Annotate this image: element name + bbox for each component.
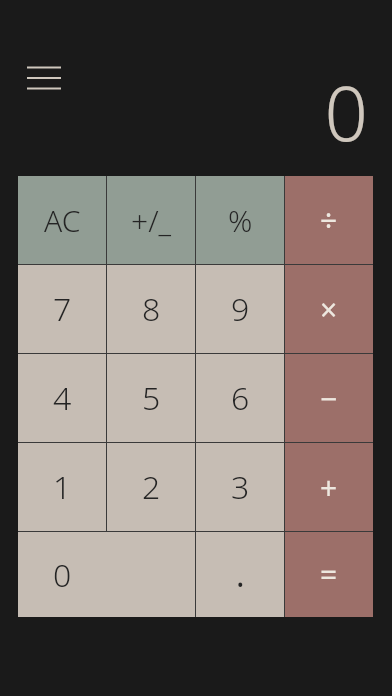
staticText: 6 bbox=[231, 376, 250, 420]
button[interactable]: +/_ bbox=[107, 176, 195, 264]
staticText: 1 bbox=[53, 465, 72, 509]
button[interactable]: = bbox=[285, 532, 373, 617]
button[interactable]: + bbox=[285, 443, 373, 531]
button[interactable]: 9 bbox=[196, 265, 284, 353]
staticText: 7 bbox=[53, 287, 72, 331]
button[interactable]: − bbox=[285, 354, 373, 442]
button[interactable]: . bbox=[196, 532, 284, 617]
button[interactable]: 4 bbox=[18, 354, 106, 442]
button[interactable]: 0 bbox=[18, 532, 195, 617]
button[interactable]: × bbox=[285, 265, 373, 353]
staticText: ÷ bbox=[320, 200, 338, 241]
staticText: 2 bbox=[142, 465, 161, 509]
staticText: 9 bbox=[231, 287, 250, 331]
staticText: AC bbox=[44, 200, 81, 241]
staticText: 0 bbox=[324, 60, 368, 164]
button[interactable]: AC bbox=[18, 176, 106, 264]
staticText: +/_ bbox=[131, 200, 172, 241]
button[interactable]: 5 bbox=[107, 354, 195, 442]
staticText: 0 bbox=[53, 553, 72, 597]
button[interactable]: 7 bbox=[18, 265, 106, 353]
button[interactable]: 6 bbox=[196, 354, 284, 442]
staticText: 3 bbox=[231, 465, 250, 509]
button[interactable]: 8 bbox=[107, 265, 195, 353]
staticText: 8 bbox=[142, 287, 161, 331]
staticText: = bbox=[320, 554, 338, 595]
button[interactable]: Menu bbox=[20, 58, 68, 98]
button[interactable]: 1 bbox=[18, 443, 106, 531]
staticText: % bbox=[228, 200, 253, 241]
staticText: 5 bbox=[142, 376, 161, 420]
button[interactable]: 3 bbox=[196, 443, 284, 531]
staticText: + bbox=[320, 467, 338, 508]
button[interactable]: 2 bbox=[107, 443, 195, 531]
button[interactable]: % bbox=[196, 176, 284, 264]
staticText: × bbox=[320, 289, 338, 330]
button[interactable]: ÷ bbox=[285, 176, 373, 264]
staticText: 4 bbox=[53, 376, 72, 420]
staticText: . bbox=[236, 553, 245, 597]
staticText: − bbox=[320, 378, 338, 419]
